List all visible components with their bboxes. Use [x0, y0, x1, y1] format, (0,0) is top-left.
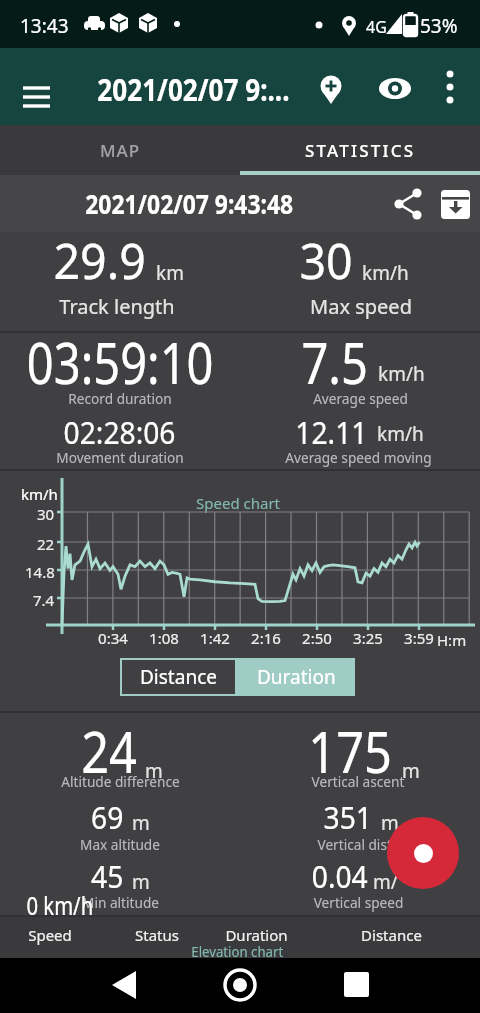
- button[interactable]: [436, 182, 480, 226]
- staticText: Max altitude: [80, 834, 160, 854]
- button[interactable]: MAP: [0, 125, 240, 175]
- staticText: km/h: [362, 260, 409, 286]
- staticText: m: [132, 869, 150, 895]
- staticText: 24: [81, 713, 138, 789]
- staticText: Average speed: [313, 388, 408, 408]
- staticText: 0.04: [312, 856, 368, 897]
- button[interactable]: [13, 74, 61, 122]
- staticText: Vertical dista: [317, 834, 400, 854]
- button[interactable]: [307, 66, 355, 114]
- staticText: 29.9: [53, 227, 147, 294]
- staticText: km/h: [378, 361, 425, 387]
- staticText: Distance: [361, 925, 422, 945]
- staticText: 69: [91, 797, 124, 838]
- staticText: Speed chart: [196, 493, 281, 513]
- staticText: 12.11: [295, 412, 368, 453]
- staticText: km/h: [377, 421, 424, 447]
- button[interactable]: [216, 966, 264, 1006]
- staticText: 0 km/h: [26, 887, 94, 922]
- button[interactable]: [371, 66, 419, 114]
- staticText: 30: [37, 504, 55, 524]
- staticText: 2021/02/07 9:43:48: [85, 186, 294, 221]
- staticText: 45: [91, 856, 124, 897]
- button[interactable]: Duration: [237, 658, 355, 696]
- staticText: 1:08: [149, 628, 179, 648]
- button[interactable]: [387, 817, 459, 889]
- staticText: 53%: [420, 13, 458, 39]
- staticText: Elevation chart: [191, 941, 284, 961]
- staticText: m: [402, 758, 420, 784]
- staticText: Average speed moving: [285, 447, 432, 467]
- staticText: 2:16: [251, 628, 281, 648]
- button[interactable]: [386, 182, 430, 226]
- staticText: m: [381, 810, 399, 836]
- staticText: Vertical speed: [313, 892, 404, 912]
- staticText: 2021/02/07 9:...: [97, 69, 290, 110]
- staticText: Duration: [257, 664, 336, 690]
- staticText: Speed: [28, 925, 72, 945]
- staticText: STATISTICS: [305, 139, 416, 162]
- staticText: 7.4: [33, 590, 55, 610]
- staticText: Status: [135, 925, 179, 945]
- button[interactable]: [332, 966, 380, 1006]
- staticText: 14.8: [25, 562, 55, 582]
- staticText: 0:34: [98, 628, 128, 648]
- button[interactable]: Distance: [120, 658, 237, 696]
- staticText: 30: [299, 227, 354, 294]
- staticText: Movement duration: [56, 447, 184, 467]
- staticText: H:m: [437, 630, 467, 650]
- staticText: 2:50: [302, 628, 332, 648]
- staticText: 3:25: [353, 628, 383, 648]
- staticText: 3:59: [404, 628, 434, 648]
- staticText: km: [156, 260, 184, 286]
- staticText: km/h: [21, 484, 58, 504]
- staticText: m: [145, 758, 163, 784]
- staticText: 351: [324, 797, 372, 838]
- staticText: 22: [37, 534, 55, 554]
- staticText: Vertical ascent: [312, 771, 404, 791]
- staticText: Altitude difference: [61, 771, 180, 791]
- staticText: 7.5: [301, 324, 369, 400]
- staticText: 4G: [366, 16, 387, 38]
- staticText: Max speed: [310, 293, 412, 320]
- staticText: Track length: [59, 293, 175, 320]
- staticText: Distance: [140, 664, 217, 690]
- staticText: 175: [308, 713, 393, 789]
- staticText: m/: [373, 869, 398, 895]
- staticText: Record duration: [68, 388, 172, 408]
- staticText: MAP: [100, 139, 141, 162]
- staticText: 02:28:06: [64, 412, 176, 453]
- staticText: Min altitude: [82, 892, 159, 912]
- staticText: Duration: [225, 925, 288, 945]
- staticText: 1:42: [200, 628, 230, 648]
- button[interactable]: [432, 66, 474, 108]
- staticText: 13:43: [20, 13, 69, 39]
- staticText: 03:59:10: [27, 324, 214, 400]
- button[interactable]: STATISTICS: [240, 125, 480, 175]
- button[interactable]: [100, 966, 148, 1006]
- staticText: m: [132, 810, 150, 836]
